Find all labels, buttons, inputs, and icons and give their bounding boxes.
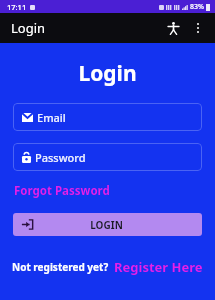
staticText: Email bbox=[37, 110, 66, 125]
staticText: Not registered yet? bbox=[12, 260, 109, 274]
button[interactable]: Accessibility bbox=[161, 16, 185, 40]
staticText: 83% bbox=[190, 2, 204, 12]
button[interactable]: Email bbox=[13, 103, 202, 131]
button[interactable]: Password bbox=[13, 143, 202, 171]
staticText: Forgot Password bbox=[14, 183, 110, 199]
staticText: Login bbox=[11, 19, 46, 37]
button[interactable]: Forgot Password bbox=[13, 180, 111, 202]
staticText: Register Here bbox=[114, 258, 203, 276]
staticText: Login bbox=[0, 59, 215, 88]
staticText: LOGIN bbox=[33, 218, 180, 232]
button[interactable]: Register Here bbox=[114, 256, 203, 278]
button[interactable]: More options bbox=[187, 17, 209, 39]
staticText: 17:11 bbox=[7, 2, 27, 12]
button[interactable]: LOGIN bbox=[13, 213, 202, 236]
staticText: Password bbox=[35, 150, 86, 165]
